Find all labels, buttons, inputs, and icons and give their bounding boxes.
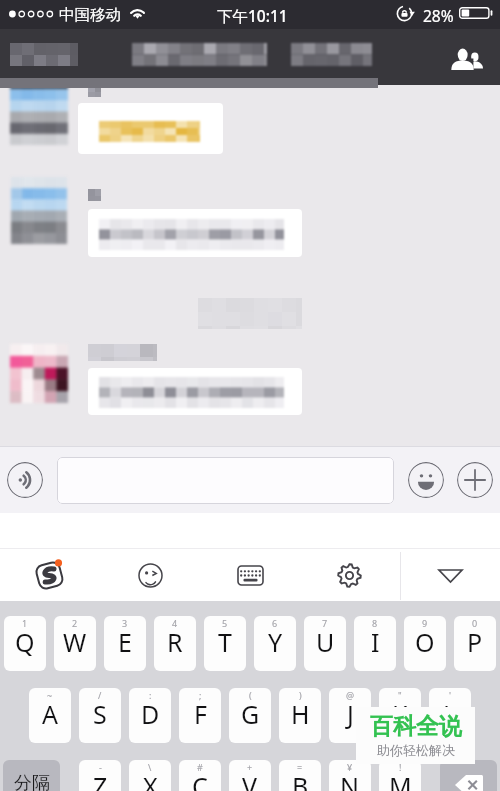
staticText: 百科全说 [370,712,462,741]
button[interactable]: More [457,462,493,498]
button[interactable]: ) [279,688,321,743]
button[interactable]: ; [179,688,221,743]
button[interactable] [57,457,394,504]
button[interactable]: # [179,760,221,791]
staticText: : [149,689,152,701]
staticText: 4 [172,617,178,629]
button[interactable]: Keyboard layout [231,556,270,595]
staticText: / [98,689,102,701]
button[interactable] [78,103,223,154]
button[interactable]: 6 [254,616,296,671]
staticText: Q [15,625,35,659]
staticText: G [241,697,260,731]
staticText: P [467,625,483,659]
staticText: ~ [47,689,53,701]
button[interactable]: Delete [440,760,497,791]
staticText: 5 [222,617,228,629]
button[interactable]: 9 [404,616,446,671]
staticText: J [347,697,354,731]
staticText: I [371,625,380,659]
staticText: ' [449,689,452,701]
button[interactable]: ! [379,760,421,791]
button[interactable]: 7 [304,616,346,671]
staticText: 28% [423,5,454,26]
staticText: B [292,769,309,791]
button[interactable]: 3 [104,616,146,671]
button[interactable]: 分隔 [3,760,60,791]
button[interactable]: Back [10,43,78,66]
staticText: + [247,761,253,773]
staticText: " [398,689,402,701]
staticText: 2 [72,617,78,629]
button[interactable]: @ [329,688,371,743]
button[interactable]: Emoji [408,462,444,498]
staticText: 8 [372,617,378,629]
staticText: L [443,697,457,731]
staticText: M [389,769,412,791]
button[interactable]: + [229,760,271,791]
staticText: X [143,769,158,791]
staticText: ¥ [347,761,353,773]
staticText: U [316,625,335,659]
staticText: 0 [472,617,478,629]
staticText: 中国移动 [59,5,121,25]
staticText: 分隔 [14,772,50,791]
button[interactable]: " [379,688,421,743]
staticText: 7 [322,617,328,629]
staticText: 3 [122,617,128,629]
staticText: 6 [272,617,278,629]
button[interactable]: ' [429,688,471,743]
staticText: F [194,697,207,731]
button[interactable]: \ [129,760,171,791]
button[interactable]: Voice input [7,462,43,498]
button[interactable] [88,209,302,257]
staticText: - [99,761,102,773]
staticText: A [42,697,58,731]
staticText: ( [249,689,252,701]
staticText: # [197,761,203,773]
staticText: K [392,697,408,731]
staticText: 助你轻松解决 [377,742,455,758]
button[interactable]: 0 [454,616,496,671]
staticText: W [63,625,87,659]
staticText: = [297,761,303,773]
staticText: Y [268,625,283,659]
staticText: E [118,625,132,659]
staticText: C [192,769,208,791]
button[interactable]: ~ [29,688,71,743]
staticText: O [415,625,435,659]
staticText: 1 [22,617,28,629]
staticText: 下午10:11 [217,5,288,26]
button[interactable]: : [129,688,171,743]
staticText: ! [399,761,402,773]
button[interactable]: / [79,688,121,743]
button[interactable]: 8 [354,616,396,671]
staticText: V [242,769,258,791]
button[interactable] [88,368,302,415]
staticText: \ [148,761,152,773]
button[interactable]: 2 [54,616,96,671]
staticText: S [93,697,107,731]
button[interactable]: 5 [204,616,246,671]
staticText: T [218,625,232,659]
button[interactable]: Hide keyboard [431,556,470,595]
staticText: ) [299,689,302,701]
button[interactable]: ¥ [329,760,371,791]
staticText: Z [93,769,108,791]
button[interactable]: Emoticons [131,556,170,595]
button[interactable]: ( [229,688,271,743]
staticText: N [340,769,360,791]
button[interactable]: Group members [441,35,493,79]
button[interactable]: - [79,760,121,791]
staticText: D [141,697,160,731]
button[interactable]: 1 [4,616,46,671]
button[interactable]: 4 [154,616,196,671]
staticText: 9 [422,617,428,629]
staticText: @ [346,689,355,701]
button[interactable]: Settings [330,556,369,595]
staticText: ; [199,689,202,701]
staticText: R [167,625,183,659]
button[interactable]: Sogou input [30,555,70,595]
button[interactable]: = [279,760,321,791]
staticText: H [291,697,310,731]
